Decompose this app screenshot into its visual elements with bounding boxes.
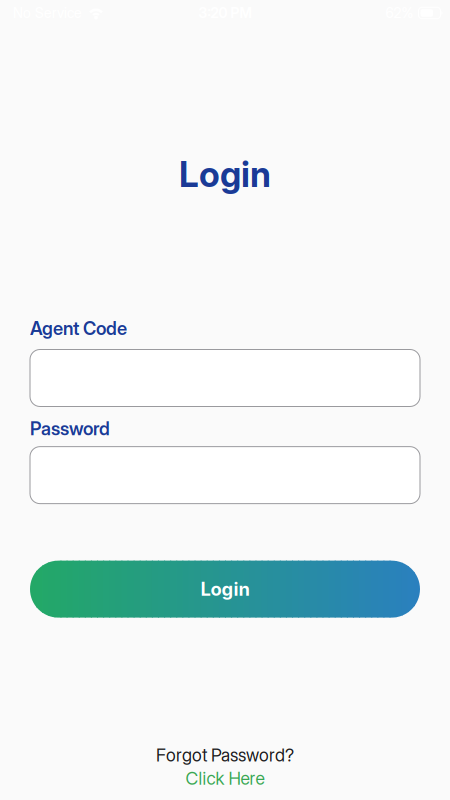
button[interactable]: Click Here bbox=[185, 768, 264, 789]
staticText: Login bbox=[179, 153, 271, 195]
staticText: Agent Code bbox=[30, 317, 127, 339]
staticText: Forgot Password? bbox=[156, 744, 294, 766]
button[interactable]: Login bbox=[30, 561, 420, 618]
staticText: Login bbox=[200, 578, 249, 600]
staticText: Click Here bbox=[185, 768, 264, 789]
staticText: Password bbox=[30, 417, 110, 440]
